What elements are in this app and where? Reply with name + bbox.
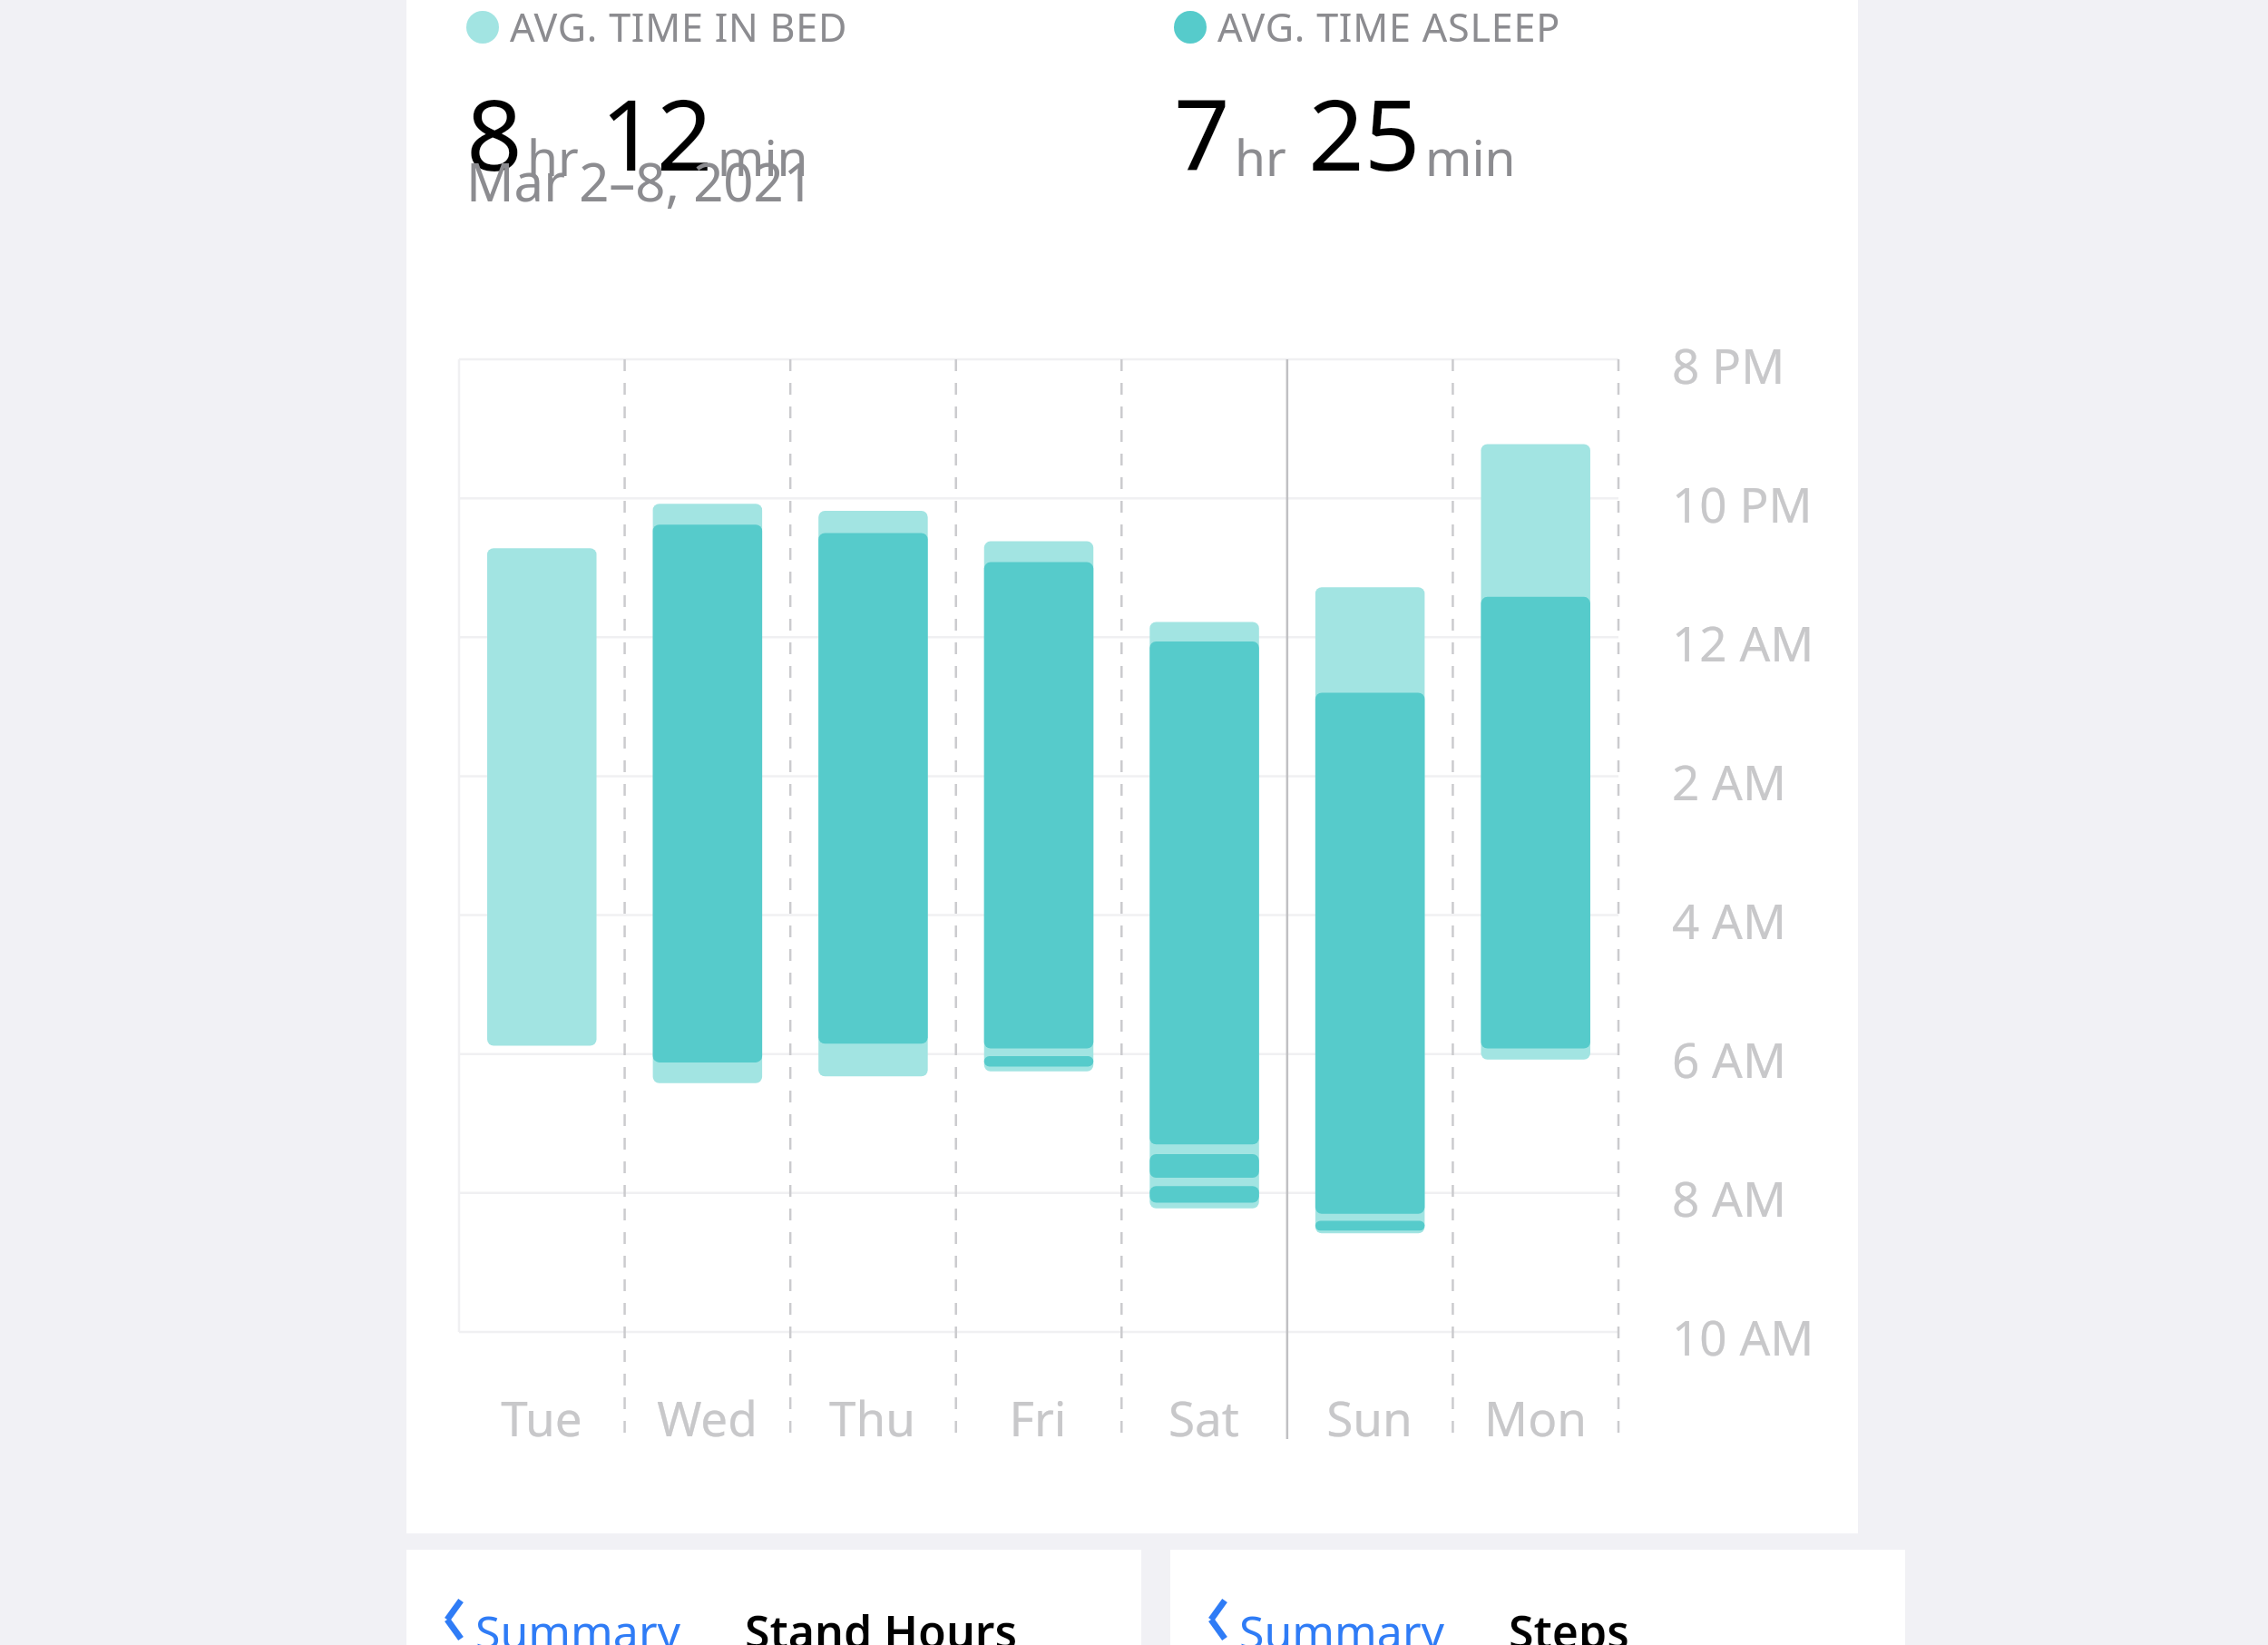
staticText: 8 (466, 66, 523, 200)
staticText: min (718, 122, 808, 191)
staticText: AVG. TIME IN BED (510, 0, 848, 54)
staticText: 6 AM (1672, 1026, 1787, 1092)
staticText: 10 AM (1672, 1304, 1814, 1369)
staticText: Mon (1484, 1385, 1587, 1450)
staticText: Mar 2–8, 2021 (466, 145, 814, 217)
staticText: Fri (1009, 1385, 1067, 1450)
staticText: hr (1235, 122, 1286, 191)
staticText: Summary (1239, 1601, 1445, 1645)
staticText: 25 (1308, 66, 1421, 200)
staticText: Steps (1509, 1601, 1629, 1645)
staticText: min (1425, 122, 1516, 191)
staticText: 4 AM (1672, 887, 1787, 953)
staticText: 2 AM (1672, 749, 1787, 814)
staticText: Wed (657, 1385, 758, 1450)
other: Back (1201, 1601, 1239, 1639)
staticText: 12 (601, 66, 713, 200)
staticText: Sun (1326, 1385, 1413, 1450)
staticText: hr (527, 122, 579, 191)
button[interactable]: Back (1170, 1550, 1905, 1645)
staticText: AVG. TIME ASLEEP (1217, 0, 1560, 54)
other: Back (437, 1601, 475, 1639)
staticText: 8 PM (1672, 332, 1785, 397)
staticText: 12 AM (1672, 610, 1814, 675)
staticText: 7 (1174, 66, 1230, 200)
staticText: Thu (829, 1385, 915, 1450)
staticText: Tue (501, 1385, 582, 1450)
staticText: Sat (1168, 1385, 1239, 1450)
staticText: 8 AM (1672, 1165, 1787, 1230)
button[interactable]: AVG. TIME IN BED (406, 0, 1858, 1533)
staticText: 10 PM (1672, 471, 1813, 536)
staticText: Stand Hours (745, 1601, 1018, 1645)
button[interactable]: Back (406, 1550, 1141, 1645)
staticText: Summary (475, 1601, 681, 1645)
